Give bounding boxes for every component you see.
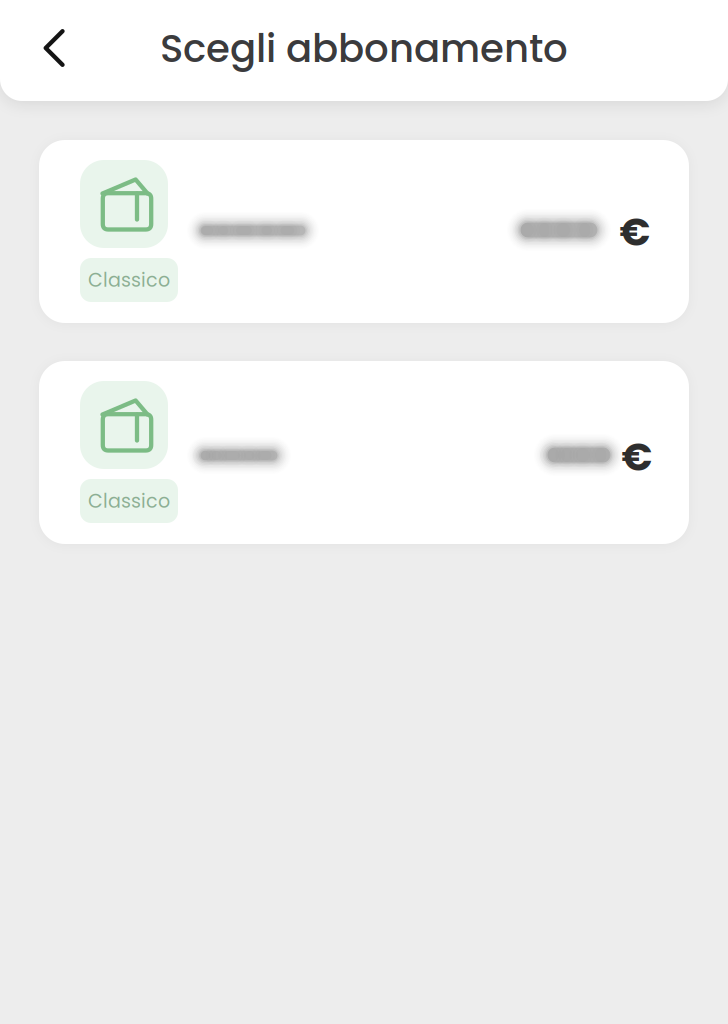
staticText: Classico [88, 267, 170, 293]
staticText: Classico [88, 488, 170, 514]
staticText: € [619, 205, 650, 259]
button[interactable]: Classico [39, 361, 689, 544]
staticText: Scegli abbonamento [160, 21, 568, 75]
button[interactable]: Back [19, 13, 89, 83]
button[interactable]: Classico [39, 140, 689, 323]
staticText: € [621, 430, 652, 484]
